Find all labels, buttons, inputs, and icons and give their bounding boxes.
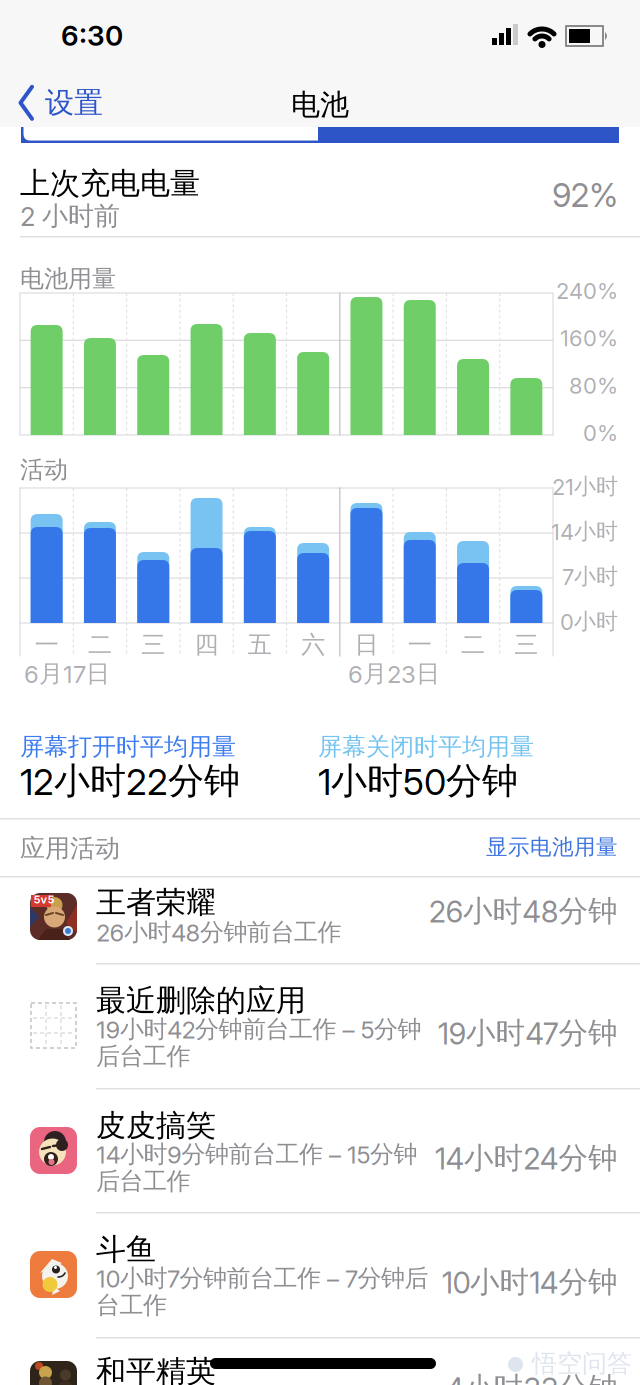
staticText: 1小时50分钟 [318, 759, 518, 803]
staticText: 6:30 [61, 19, 123, 52]
staticText: 活动 [20, 455, 68, 484]
button[interactable]: 斗鱼 [0, 1212, 640, 1337]
staticText: 240% [556, 278, 618, 304]
staticText: 皮皮搞笑 [96, 1107, 216, 1144]
staticText: 92% [552, 176, 618, 214]
button[interactable]: 和平精英 [0, 1337, 640, 1385]
staticText: 26小时48分钟前台工作 [96, 919, 341, 946]
staticText: 14小时9分钟前台工作 – 15分钟 后台工作 [96, 1141, 417, 1194]
staticText: 二 [88, 630, 112, 659]
staticText: 26小时48分钟 [429, 893, 618, 929]
staticText: 一 [35, 630, 59, 659]
staticText: 应用活动 [20, 833, 120, 864]
staticText: 王者荣耀 [96, 884, 216, 921]
staticText: 二 [461, 630, 485, 659]
staticText: 三 [514, 630, 538, 659]
staticText: 10小时7分钟前台工作 – 7分钟后 台工作 [96, 1265, 428, 1318]
staticText: 6月23日 [348, 659, 440, 688]
staticText: 六 [301, 630, 325, 659]
staticText: 21小时 [552, 473, 618, 500]
staticText: 14小时 [551, 518, 618, 545]
staticText: 日 [354, 630, 378, 659]
staticText: 上次充电电量 [20, 165, 200, 202]
staticText: 电池用量 [20, 264, 116, 293]
staticText: 五 [248, 630, 272, 659]
staticText: 7小时 [562, 563, 618, 590]
button[interactable]: 最近24小时 [21, 126, 318, 143]
staticText: 屏幕关闭时平均用量 [318, 732, 534, 761]
staticText: 显示电池用量 [486, 834, 618, 860]
button[interactable]: 返回设置 [18, 85, 103, 121]
staticText: 最近删除的应用 [96, 982, 306, 1019]
staticText: 12小时22分钟 [20, 759, 240, 803]
staticText: 电池 [291, 87, 349, 123]
staticText: 160% [560, 325, 618, 351]
button[interactable]: 显示电池用量 [20, 834, 618, 860]
staticText: 80% [569, 373, 618, 399]
staticText: 斗鱼 [96, 1231, 156, 1268]
button[interactable]: 5v5 [0, 876, 640, 963]
staticText: 2 小时前 [20, 200, 120, 232]
staticText: 4小时33分钟 [445, 1370, 618, 1385]
staticText: 和平精英 [96, 1353, 216, 1385]
staticText: 14小时24分钟 [435, 1140, 618, 1176]
staticText: 悟空问答 [532, 1348, 632, 1379]
staticText: 一 [408, 630, 432, 659]
staticText: 5v5 [33, 893, 54, 906]
staticText: 6月17日 [24, 659, 110, 688]
staticText: 0% [583, 420, 618, 446]
staticText: 19小时42分钟前台工作 – 5分钟 后台工作 [96, 1016, 421, 1069]
staticText: 10小时14分钟 [442, 1264, 618, 1300]
staticText: 0小时 [560, 608, 618, 635]
staticText: 四 [194, 630, 218, 659]
staticText: 19小时47分钟 [438, 1015, 618, 1051]
staticText: 三 [141, 630, 165, 659]
button[interactable]: 最近10天 [318, 126, 619, 143]
staticText: 屏幕打开时平均用量 [20, 732, 236, 761]
staticText: 设置 [45, 85, 103, 121]
button[interactable]: 皮皮搞笑 [0, 1088, 640, 1212]
button[interactable]: 最近删除的应用 [0, 963, 640, 1088]
